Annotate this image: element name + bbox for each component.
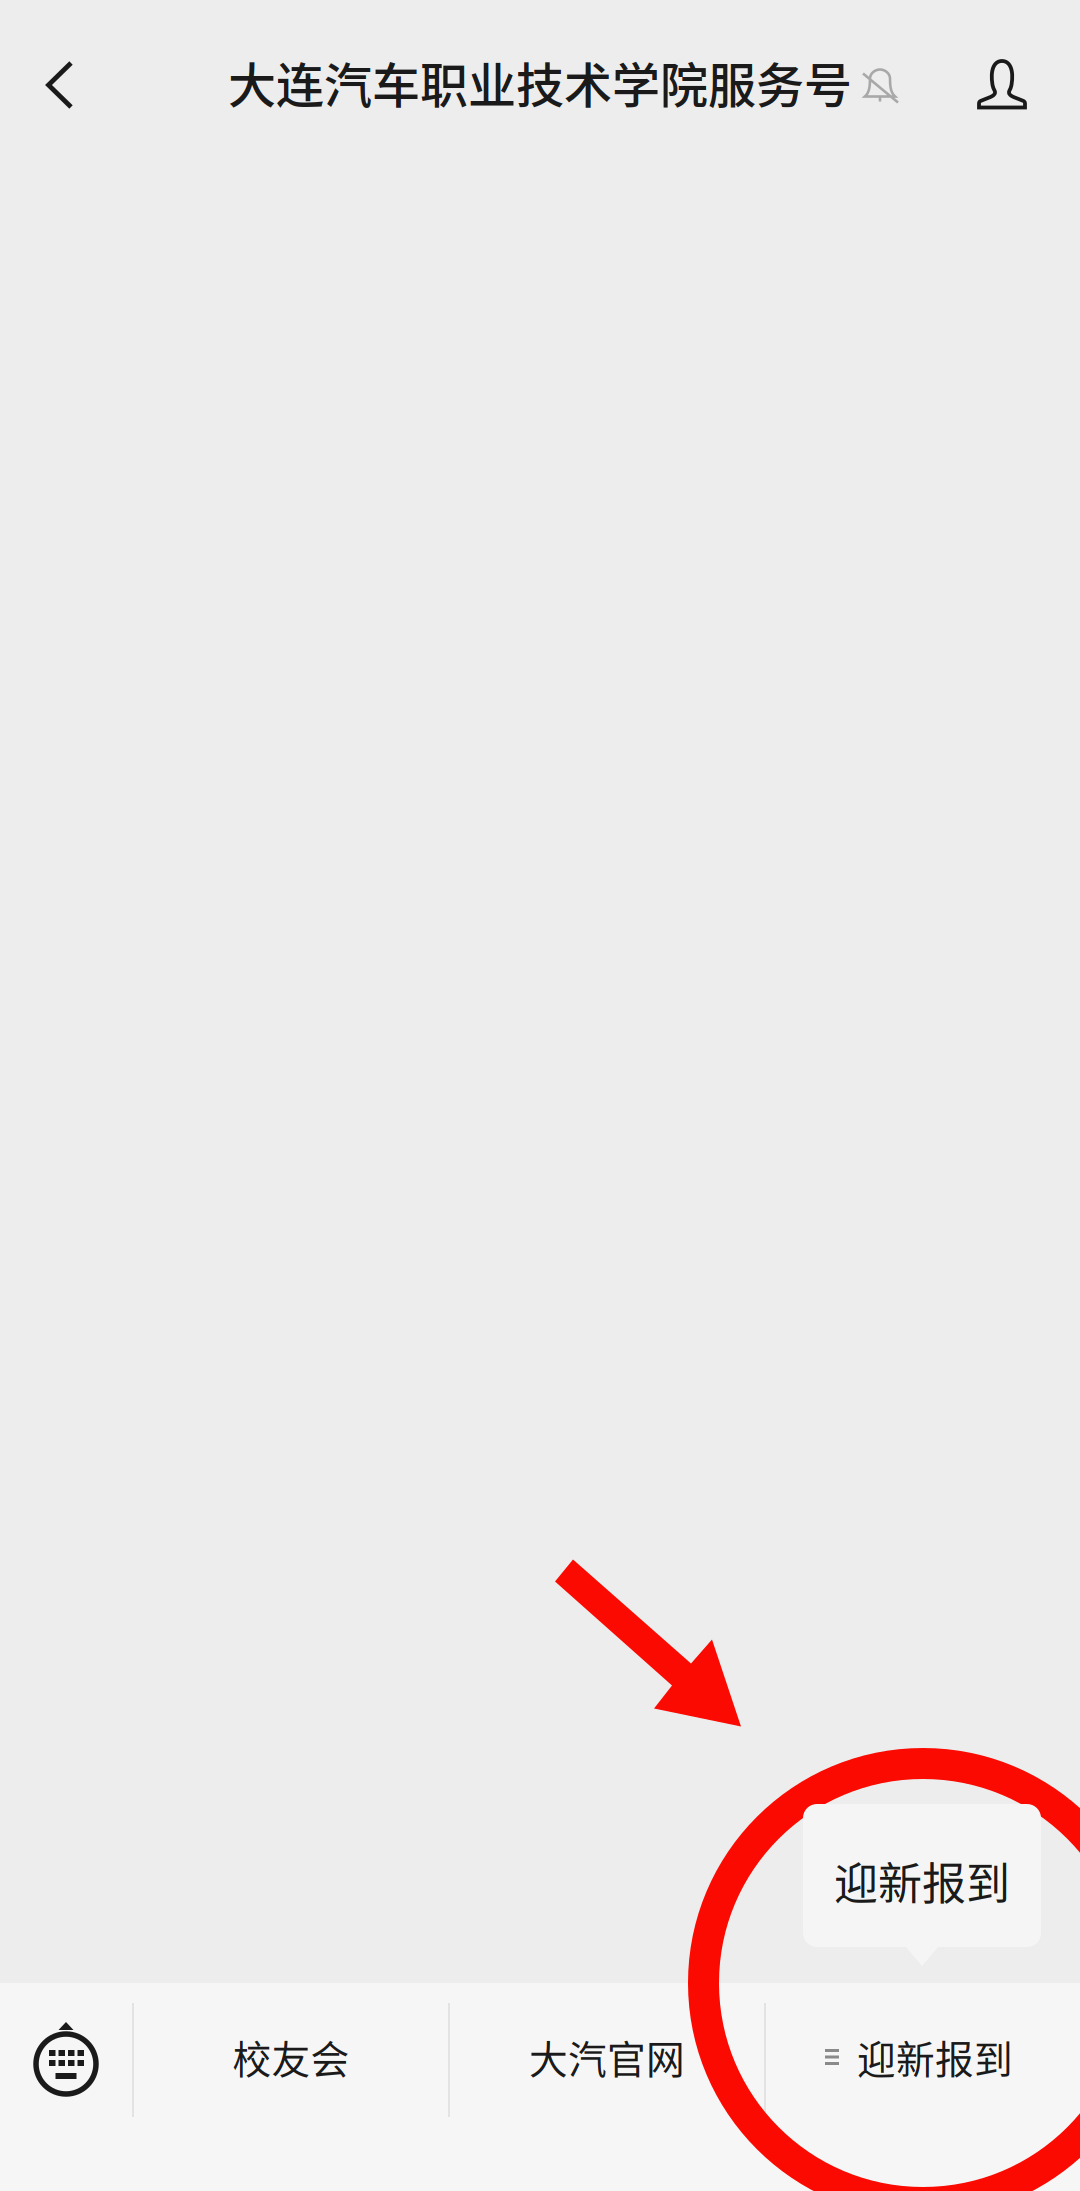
staticText: 迎新报到 [834,1849,1010,1912]
button[interactable]: 迎新报到 [766,1983,1080,2137]
button[interactable]: 大汽官网 [450,1983,764,2137]
staticText: 大汽官网 [529,2029,685,2085]
staticText: 大连汽车职业技术学院服务号 [228,47,852,117]
button[interactable]: Switch to keyboard [0,1983,132,2137]
staticText: 校友会 [232,2029,349,2085]
button[interactable]: Back [0,0,119,170]
button[interactable]: Contacts [925,0,1080,170]
staticText: 迎新报到 [857,2029,1013,2085]
button[interactable]: 校友会 [134,1983,448,2137]
